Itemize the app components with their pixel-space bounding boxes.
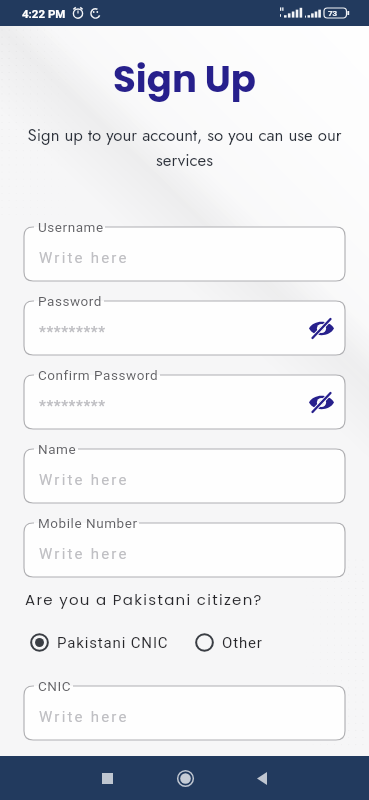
button[interactable]: Toggle password visibility [303, 310, 339, 346]
staticText: Write here [39, 249, 129, 267]
button[interactable]: Password [24, 293, 345, 355]
staticText: 4:22 PM [22, 7, 66, 20]
button[interactable]: Mobile Number [24, 515, 345, 577]
button[interactable]: Other [195, 633, 263, 652]
button[interactable]: Confirm Password [24, 367, 345, 429]
staticText: Username [38, 219, 104, 235]
button[interactable]: Back [240, 756, 284, 800]
staticText: Write here [39, 471, 129, 489]
button[interactable]: Pakistani CNIC [30, 633, 169, 652]
staticText: Pakistani CNIC [57, 634, 169, 652]
button[interactable]: Home [163, 756, 207, 800]
staticText: Sign Up [0, 53, 369, 105]
staticText: Other [222, 634, 263, 652]
staticText: 73 [328, 9, 338, 18]
staticText: Confirm Password [38, 367, 159, 383]
staticText: Write here [39, 545, 129, 563]
staticText: ********* [39, 323, 106, 341]
button[interactable]: Username [24, 219, 345, 281]
staticText: Mobile Number [38, 515, 138, 531]
staticText: ********* [39, 397, 106, 415]
staticText: CNIC [38, 678, 72, 694]
staticText: Sign up to your account, so you can use … [12, 123, 357, 172]
button[interactable]: Recents [85, 756, 129, 800]
button[interactable]: Name [24, 441, 345, 503]
staticText: Password [38, 293, 103, 309]
staticText: Are you a Pakistani citizen? [25, 589, 263, 610]
staticText: Name [38, 441, 77, 457]
button[interactable]: CNIC [24, 678, 345, 740]
button[interactable]: Toggle password visibility [303, 384, 339, 420]
staticText: Write here [39, 708, 129, 726]
